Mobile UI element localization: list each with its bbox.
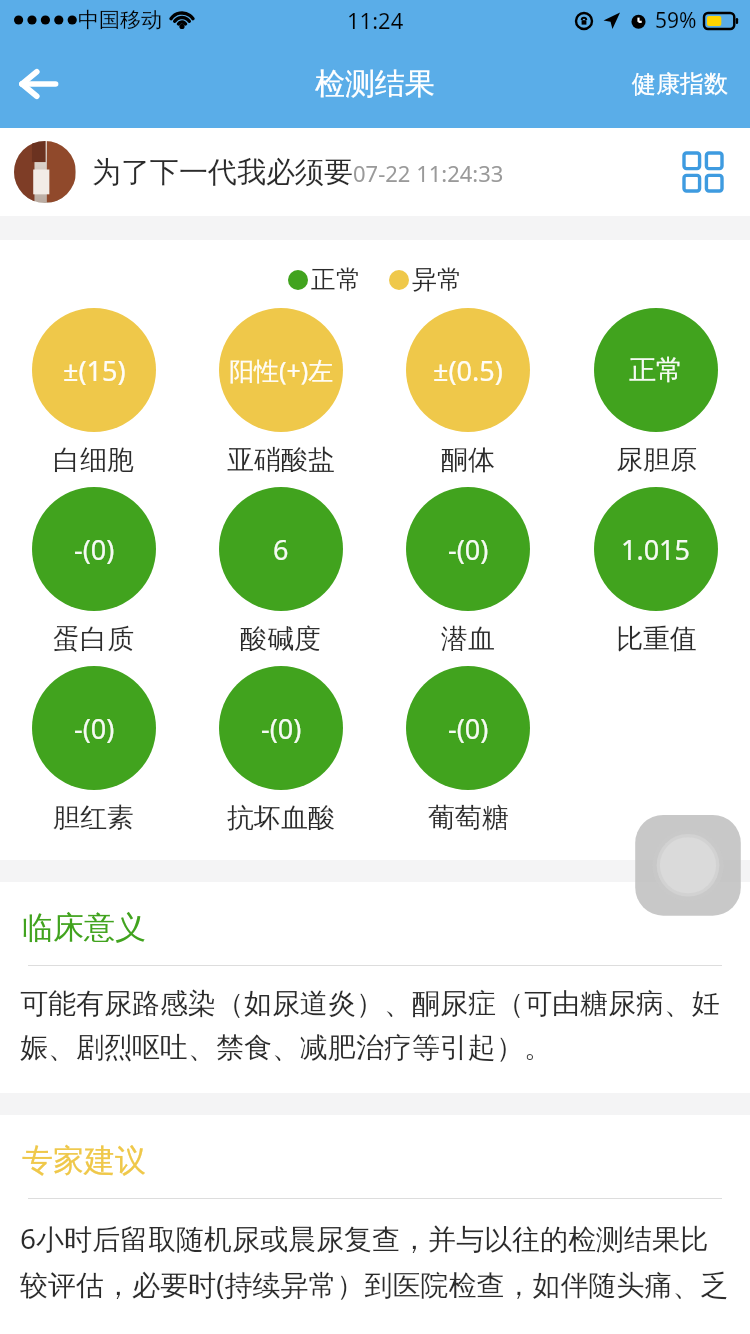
- staticText: 葡萄糖: [428, 801, 509, 835]
- staticText: 检测结果: [315, 65, 435, 103]
- staticText: 07-22 11:24:33: [353, 158, 504, 188]
- staticText: ±(15): [63, 352, 126, 389]
- staticText: 酸碱度: [240, 622, 321, 656]
- staticText: 专家建议: [22, 1141, 146, 1180]
- staticText: 白细胞: [53, 443, 134, 477]
- staticText: 6: [273, 531, 289, 568]
- staticText: 异常: [412, 264, 462, 295]
- staticText: 蛋白质: [53, 622, 134, 656]
- button[interactable]: -(0): [187, 661, 374, 840]
- staticText: 抗坏血酸: [227, 801, 335, 835]
- staticText: 中国移动: [78, 7, 162, 33]
- button[interactable]: 正常: [562, 303, 750, 482]
- staticText: 亚硝酸盐: [227, 443, 335, 477]
- button[interactable]: 辅助触控: [628, 812, 748, 920]
- staticText: 59%: [655, 6, 697, 35]
- staticText: -(0): [261, 710, 302, 747]
- staticText: 可能有尿路感染（如尿道炎）、酮尿症（可由糖尿病、妊娠、剧烈呕吐、禁食、减肥治疗等…: [20, 986, 736, 1065]
- staticText: 1.015: [621, 531, 691, 568]
- staticText: -(0): [448, 531, 489, 568]
- staticText: -(0): [74, 531, 115, 568]
- button[interactable]: -(0): [0, 661, 187, 840]
- staticText: 潜血: [441, 622, 495, 656]
- staticText: 6小时后留取随机尿或晨尿复查，并与以往的检测结果比较评估，必要时(持续异常）到医…: [20, 1219, 736, 1306]
- staticText: 健康指数: [632, 69, 728, 99]
- button[interactable]: -(0): [374, 661, 562, 840]
- staticText: 尿胆原: [616, 443, 697, 477]
- staticText: 临床意义: [22, 908, 146, 947]
- button[interactable]: -(0): [374, 482, 562, 661]
- staticText: 正常: [629, 353, 683, 387]
- button[interactable]: 阳性(+)左: [187, 303, 374, 482]
- staticText: 为了下一代我必须要: [92, 154, 353, 191]
- staticText: 正常: [311, 264, 361, 295]
- button[interactable]: ±(0.5): [374, 303, 562, 482]
- button[interactable]: ±(15): [0, 303, 187, 482]
- staticText: ±(0.5): [433, 352, 503, 389]
- button[interactable]: 1.015: [562, 482, 750, 661]
- button[interactable]: 返回: [0, 46, 76, 122]
- staticText: 胆红素: [53, 801, 134, 835]
- staticText: 阳性(+)左: [229, 353, 334, 387]
- button[interactable]: 更多: [674, 143, 732, 201]
- button[interactable]: 健康指数: [624, 57, 736, 111]
- staticText: -(0): [74, 710, 115, 747]
- button[interactable]: 6: [187, 482, 374, 661]
- staticText: 11:24: [347, 5, 404, 35]
- staticText: -(0): [448, 710, 489, 747]
- staticText: 比重值: [616, 622, 697, 656]
- button[interactable]: -(0): [0, 482, 187, 661]
- staticText: 酮体: [441, 443, 495, 477]
